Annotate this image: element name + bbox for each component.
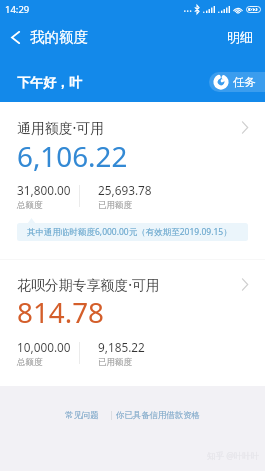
staticText: 其中通用临时额度6,000.00元（有效期至2019.09.15）	[27, 226, 232, 238]
staticText: 总额度	[17, 200, 43, 211]
button[interactable]: 花呗分期专享额度·可用	[0, 272, 265, 297]
staticText: 9,185.22	[98, 339, 145, 355]
button[interactable]: 明细	[215, 29, 265, 45]
staticText: 你已具备信用借款资格	[116, 410, 200, 421]
staticText: 31,800.00	[17, 182, 71, 198]
staticText: 知乎 @叶叶叶	[207, 450, 260, 462]
staticText: 任务	[233, 75, 256, 89]
staticText: 常见问题	[65, 410, 99, 421]
staticText: 花呗分期专享额度·可用	[17, 275, 160, 294]
button[interactable]: 其中通用临时额度6,000.00元（有效期至2019.09.15）	[17, 223, 248, 241]
staticText: 已用额度	[98, 357, 132, 368]
button[interactable]: 任务	[209, 72, 265, 92]
staticText: 我的额度	[30, 28, 88, 46]
other: Back	[11, 31, 20, 44]
staticText: 10,000.00	[17, 339, 71, 355]
button[interactable]: 常见问题	[61, 406, 111, 425]
staticText: 25,693.78	[98, 182, 152, 198]
staticText: 6,106.22	[17, 137, 128, 175]
button[interactable]: 通用额度·可用	[0, 115, 265, 140]
staticText: 明细	[227, 29, 253, 45]
button[interactable]: Back	[0, 28, 96, 46]
button[interactable]: 你已具备信用借款资格	[112, 406, 204, 425]
staticText: 92	[250, 6, 257, 13]
staticText: 下午好，叶	[17, 74, 82, 90]
staticText: 已用额度	[98, 200, 132, 211]
staticText: 总额度	[17, 357, 43, 368]
staticText: 通用额度·可用	[17, 118, 105, 137]
staticText: 14:29	[5, 3, 30, 16]
staticText: 814.78	[17, 293, 104, 331]
